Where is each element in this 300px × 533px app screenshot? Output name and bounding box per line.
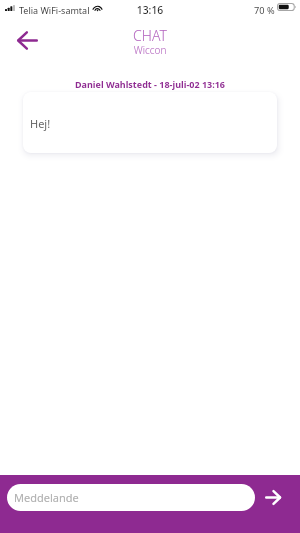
staticText: CHAT: [0, 26, 300, 45]
staticText: Daniel Wahlstedt - 18-juli-02 13:16: [0, 78, 300, 90]
staticText: 70 %: [254, 4, 275, 17]
button[interactable]: Back: [11, 25, 44, 55]
button[interactable]: Meddelande: [7, 484, 255, 511]
staticText: Hej!: [30, 116, 51, 131]
staticText: Wiccon: [0, 43, 300, 57]
staticText: Telia WiFi-samtal: [19, 4, 90, 16]
staticText: 13:16: [0, 3, 300, 17]
button[interactable]: Hej!: [23, 92, 277, 153]
staticText: Meddelande: [14, 490, 79, 505]
button[interactable]: Send: [259, 483, 287, 511]
